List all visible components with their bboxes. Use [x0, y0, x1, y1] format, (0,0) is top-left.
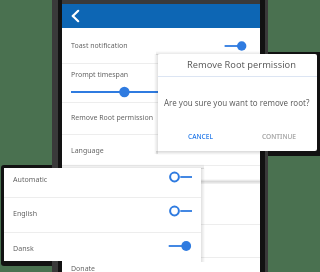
button[interactable]: Prompt timespan [62, 64, 260, 102]
button[interactable]: Toast notification [62, 29, 260, 63]
button[interactable]: Back [65, 4, 85, 28]
button[interactable]: Automatic [4, 168, 201, 197]
staticText: Automatic [13, 174, 48, 184]
staticText: English [13, 208, 38, 218]
button[interactable]: CANCEL [169, 125, 233, 147]
staticText: Remove Root permission [71, 113, 154, 123]
button[interactable]: English [4, 197, 201, 232]
staticText: Are you sure you want to remove root? [164, 97, 310, 108]
staticText: Language [71, 146, 104, 156]
button[interactable]: CONTINUE [247, 125, 311, 147]
button[interactable]: Dansk [4, 232, 201, 261]
button[interactable]: Language [62, 135, 260, 165]
button[interactable]: Remove Root permission [62, 103, 260, 134]
button[interactable]: Donate [62, 258, 260, 272]
staticText: Toast notification [71, 41, 128, 51]
staticText: Donate [71, 264, 96, 272]
staticText: Prompt timespan [71, 70, 129, 80]
staticText: Remove Root permission [187, 58, 296, 71]
staticText: CANCEL [188, 132, 214, 141]
staticText: CONTINUE [262, 132, 297, 141]
staticText: Dansk [13, 243, 34, 253]
